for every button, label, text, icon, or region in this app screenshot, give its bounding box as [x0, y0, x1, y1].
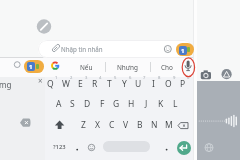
button[interactable]: J: [140, 98, 153, 110]
staticText: 3: [85, 75, 88, 81]
button[interactable]: [176, 43, 194, 56]
button[interactable]: [51, 118, 65, 131]
button[interactable]: R: [88, 78, 101, 90]
button[interactable]: Z: [77, 119, 90, 131]
button[interactable]: U: [132, 78, 145, 90]
button[interactable]: [221, 69, 232, 80]
staticText: 5: [114, 75, 117, 81]
button[interactable]: [49, 60, 61, 72]
staticText: 0: [187, 75, 190, 81]
staticText: 2: [70, 75, 73, 81]
button[interactable]: P: [176, 78, 189, 90]
button[interactable]: X: [91, 119, 104, 131]
staticText: Nhập tin nhắn: [61, 45, 103, 53]
staticText: Nếu: [80, 63, 93, 72]
staticText: X: [95, 119, 100, 131]
button[interactable]: F: [96, 98, 109, 110]
button[interactable]: [176, 119, 190, 131]
button[interactable]: K: [154, 98, 167, 110]
staticText: C: [109, 119, 115, 131]
staticText: 9: [173, 75, 176, 81]
button[interactable]: [38, 40, 193, 58]
button[interactable]: ×: [35, 75, 45, 85]
staticText: I: [152, 78, 155, 90]
button[interactable]: N: [148, 119, 161, 131]
button[interactable]: Q: [44, 78, 57, 90]
button[interactable]: B: [133, 119, 146, 131]
staticText: P: [180, 78, 186, 90]
button[interactable]: I: [147, 78, 160, 90]
staticText: U: [135, 78, 142, 90]
button[interactable]: [103, 141, 150, 152]
staticText: M: [165, 119, 173, 131]
button[interactable]: C: [105, 119, 118, 131]
staticText: Cho: [161, 63, 173, 72]
button[interactable]: G: [110, 98, 123, 110]
staticText: Y: [122, 78, 127, 90]
staticText: V: [123, 119, 129, 131]
staticText: S: [70, 98, 75, 110]
staticText: 4: [99, 75, 102, 81]
button[interactable]: [177, 141, 191, 155]
button[interactable]: [199, 69, 212, 80]
staticText: Q: [47, 78, 54, 90]
button[interactable]: W: [59, 78, 72, 90]
button[interactable]: O: [162, 78, 175, 90]
button[interactable]: [24, 60, 44, 73]
button[interactable]: [181, 58, 195, 76]
staticText: K: [158, 98, 164, 110]
staticText: 7: [143, 75, 146, 81]
button[interactable]: ?123: [50, 142, 68, 152]
staticText: 8: [158, 75, 161, 81]
staticText: G: [113, 98, 120, 110]
button[interactable]: M: [162, 119, 175, 131]
button[interactable]: [163, 44, 173, 54]
staticText: mg: [0, 79, 12, 90]
staticText: F: [100, 98, 105, 110]
button[interactable]: E: [74, 78, 87, 90]
button[interactable]: V: [119, 119, 132, 131]
button[interactable]: Cho: [153, 59, 181, 75]
staticText: 1: [181, 47, 185, 55]
staticText: B: [137, 119, 143, 131]
button[interactable]: Nếu: [70, 59, 102, 75]
staticText: A: [56, 98, 62, 110]
button[interactable]: A: [52, 98, 65, 110]
button[interactable]: [197, 81, 240, 160]
button[interactable]: [204, 142, 215, 153]
staticText: W: [62, 78, 70, 90]
button[interactable]: T: [103, 78, 116, 90]
button[interactable]: L: [169, 98, 182, 110]
button[interactable]: S: [66, 98, 79, 110]
staticText: 1: [29, 63, 33, 71]
staticText: T: [107, 78, 112, 90]
staticText: L: [173, 98, 178, 110]
staticText: D: [84, 98, 91, 110]
staticText: Nhưng: [117, 63, 138, 72]
staticText: 1: [55, 75, 58, 81]
staticText: Z: [81, 119, 86, 131]
button[interactable]: [12, 59, 23, 70]
button[interactable]: D: [81, 98, 94, 110]
button[interactable]: Y: [118, 78, 131, 90]
staticText: ×: [38, 75, 43, 85]
staticText: O: [165, 78, 172, 90]
button[interactable]: [86, 142, 97, 153]
staticText: 6: [129, 75, 132, 81]
button[interactable]: H: [125, 98, 138, 110]
staticText: N: [151, 119, 158, 131]
staticText: H: [128, 98, 135, 110]
staticText: E: [78, 78, 83, 90]
staticText: J: [145, 98, 148, 110]
staticText: R: [92, 78, 98, 90]
button[interactable]: Nhưng: [107, 59, 147, 75]
staticText: ?123: [53, 143, 66, 151]
